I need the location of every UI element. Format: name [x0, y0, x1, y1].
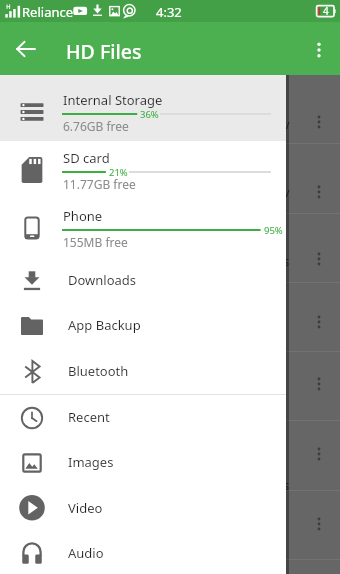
button[interactable]: App Backup: [0, 303, 286, 348]
button[interactable]: More options: [301, 31, 337, 67]
button[interactable]: Images: [0, 440, 286, 485]
staticText: 155MB free: [63, 234, 128, 250]
button[interactable]: Audio: [0, 531, 286, 574]
staticText: App Backup: [68, 316, 141, 334]
staticText: 21%: [109, 166, 128, 179]
staticText: 4:32: [156, 3, 182, 21]
staticText: 36%: [140, 108, 159, 121]
staticText: Video: [68, 499, 103, 517]
staticText: s: [284, 476, 290, 490]
staticText: Downloads: [68, 271, 137, 289]
staticText: s: [284, 252, 290, 266]
staticText: Internal Storage: [63, 91, 163, 109]
button[interactable]: Downloads: [0, 258, 286, 303]
staticText: Bluetooth: [68, 362, 129, 380]
staticText: Recent: [68, 408, 110, 426]
staticText: Phone: [63, 207, 103, 225]
button[interactable]: SD card: [0, 133, 286, 191]
staticText: 6.76GB free: [63, 118, 129, 134]
button[interactable]: Recent: [0, 395, 286, 440]
staticText: SD card: [63, 149, 110, 167]
staticText: y: [284, 115, 290, 129]
staticText: y: [284, 183, 290, 197]
button[interactable]: Back: [8, 31, 44, 67]
button[interactable]: Bluetooth: [0, 349, 286, 394]
staticText: Reliance: [22, 3, 74, 21]
button[interactable]: Internal Storage: [0, 75, 286, 133]
staticText: 95%: [264, 224, 283, 237]
staticText: Audio: [68, 544, 104, 562]
button[interactable]: Video: [0, 486, 286, 531]
staticText: Images: [68, 453, 114, 471]
button[interactable]: Phone: [0, 191, 286, 249]
staticText: HD Files: [66, 38, 142, 65]
staticText: 11.77GB free: [63, 176, 136, 192]
staticText: 4: [323, 4, 329, 18]
